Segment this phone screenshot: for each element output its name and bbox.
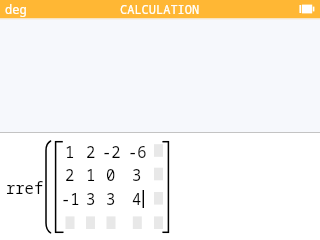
staticText: 3 xyxy=(106,188,116,209)
staticText: 1 xyxy=(65,141,75,162)
staticText: CALCULATION xyxy=(120,1,200,17)
staticText: deg xyxy=(5,1,27,17)
button[interactable]: deg xyxy=(0,0,320,18)
staticText: 1 xyxy=(86,164,96,185)
staticText: 2 xyxy=(86,141,96,162)
button[interactable]: rref xyxy=(0,133,320,240)
staticText: -1 xyxy=(61,188,80,209)
staticText: 3 xyxy=(132,164,142,185)
staticText: 3 xyxy=(86,188,96,209)
staticText: 4 xyxy=(132,188,142,209)
staticText: 2 xyxy=(65,164,75,185)
staticText: rref xyxy=(6,177,44,198)
staticText: -2 xyxy=(102,141,121,162)
staticText: -6 xyxy=(128,141,147,162)
staticText: 0 xyxy=(106,164,116,185)
